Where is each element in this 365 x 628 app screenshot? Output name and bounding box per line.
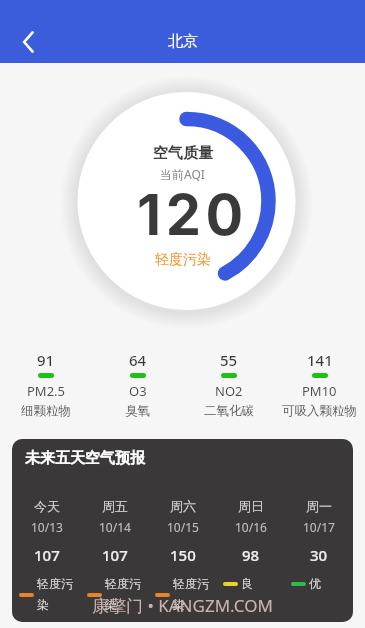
staticText: PM2.5: [27, 382, 66, 400]
staticText: 10/14: [99, 519, 131, 535]
staticText: 轻度污染: [105, 576, 143, 613]
staticText: 55: [220, 350, 238, 370]
staticText: 107: [102, 545, 128, 565]
staticText: 150: [170, 545, 196, 565]
button[interactable]: 91: [0, 350, 92, 419]
staticText: 10/16: [235, 519, 267, 535]
button[interactable]: 轻度污染: [12, 576, 81, 613]
button[interactable]: [14, 27, 44, 57]
staticText: 当前AQI: [160, 166, 205, 182]
button[interactable]: 轻度污染: [81, 576, 149, 613]
staticText: 10/13: [31, 519, 63, 535]
staticText: 优: [309, 576, 347, 591]
staticText: 91: [37, 350, 55, 370]
staticText: PM10: [302, 382, 337, 400]
staticText: 周一: [306, 498, 332, 514]
staticText: 轻度污染: [37, 576, 75, 613]
staticText: 10/15: [167, 519, 199, 535]
staticText: 周五: [102, 498, 128, 514]
staticText: 北京: [168, 32, 198, 51]
staticText: 未来五天空气预报: [25, 449, 145, 468]
staticText: 可吸入颗粒物: [282, 403, 357, 419]
button[interactable]: 优: [285, 576, 353, 591]
staticText: 轻度污染: [155, 251, 211, 269]
staticText: 臭氧: [125, 403, 150, 419]
button[interactable]: 64: [92, 350, 183, 419]
button[interactable]: 轻度污染: [149, 576, 217, 613]
staticText: 10/17: [303, 519, 335, 535]
staticText: 30: [310, 545, 328, 565]
staticText: 98: [242, 545, 260, 565]
staticText: 周六: [170, 498, 196, 514]
staticText: 细颗粒物: [21, 403, 71, 419]
staticText: 64: [129, 350, 147, 370]
staticText: 良: [241, 576, 279, 591]
staticText: 康擎门 • KANGZM.COM: [92, 594, 273, 617]
staticText: 二氧化碳: [204, 403, 254, 419]
staticText: 120: [137, 181, 248, 249]
staticText: 轻度污染: [173, 576, 211, 613]
staticText: 107: [34, 545, 60, 565]
button[interactable]: 55: [183, 350, 274, 419]
staticText: 空气质量: [153, 144, 213, 163]
staticText: 141: [307, 350, 333, 370]
staticText: O3: [129, 382, 147, 400]
staticText: 周日: [238, 498, 264, 514]
button[interactable]: 良: [217, 576, 285, 591]
button[interactable]: 141: [274, 350, 365, 419]
staticText: 今天: [34, 498, 60, 514]
staticText: NO2: [215, 382, 243, 400]
